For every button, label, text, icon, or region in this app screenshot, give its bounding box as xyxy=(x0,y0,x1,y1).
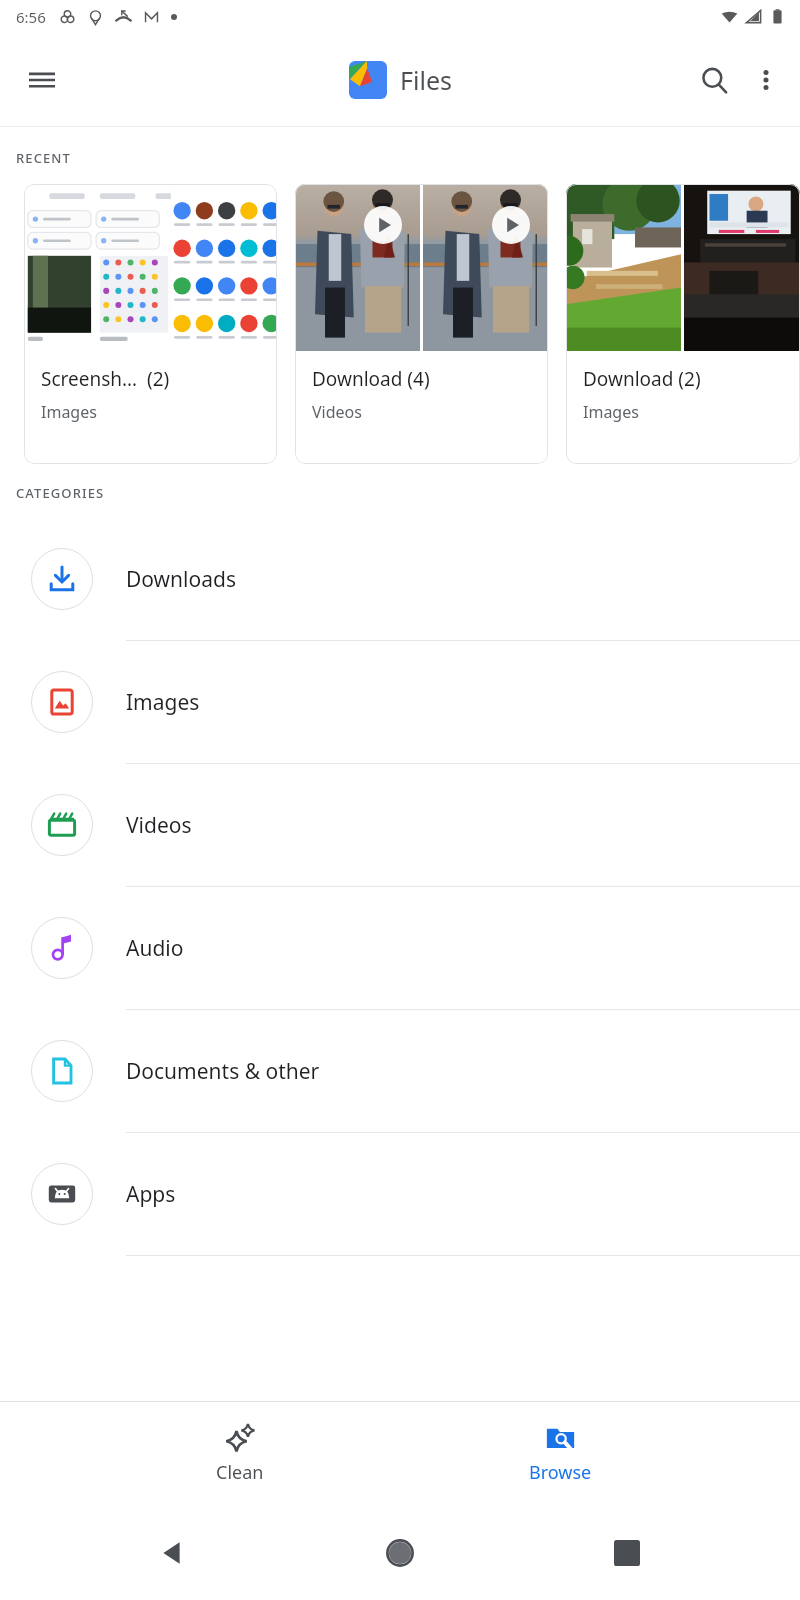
staticText: Browse xyxy=(529,1460,592,1485)
button[interactable]: Download (4) xyxy=(295,184,548,464)
staticText: Clean xyxy=(216,1460,264,1485)
button[interactable]: Videos xyxy=(0,764,800,887)
staticText: Images xyxy=(126,688,200,717)
staticText: Download (2) xyxy=(583,366,701,392)
staticText: 6:56 xyxy=(16,7,46,27)
button[interactable]: Download (2) xyxy=(566,184,800,464)
staticText: Screensh… (2) xyxy=(41,366,170,392)
button[interactable]: Browse xyxy=(400,1402,720,1505)
staticText: Apps xyxy=(126,1180,176,1209)
button[interactable]: Images xyxy=(0,641,800,764)
other: Home xyxy=(385,1538,415,1568)
other: Recent apps xyxy=(614,1540,640,1566)
button[interactable]: Documents & other xyxy=(0,1010,800,1133)
button[interactable]: Search xyxy=(688,54,740,106)
staticText: Downloads xyxy=(126,565,236,594)
button[interactable]: Audio xyxy=(0,887,800,1010)
staticText: RECENT xyxy=(16,149,71,167)
button[interactable]: Open navigation menu xyxy=(18,56,66,104)
staticText: Videos xyxy=(126,811,192,840)
staticText: Files xyxy=(400,63,452,97)
button[interactable]: Downloads xyxy=(0,518,800,641)
button[interactable]: More options xyxy=(740,54,792,106)
staticText: Download (4) xyxy=(312,366,430,392)
other: Back xyxy=(158,1538,188,1568)
button[interactable]: Clean xyxy=(80,1402,400,1505)
staticText: Images xyxy=(41,401,97,423)
staticText: Audio xyxy=(126,934,184,963)
button[interactable]: Apps xyxy=(0,1133,800,1256)
staticText: Images xyxy=(583,401,639,423)
staticText: CATEGORIES xyxy=(16,484,105,502)
staticText: Videos xyxy=(312,401,362,423)
button[interactable]: Screensh… (2) xyxy=(24,184,277,464)
staticText: Documents & other xyxy=(126,1057,320,1086)
